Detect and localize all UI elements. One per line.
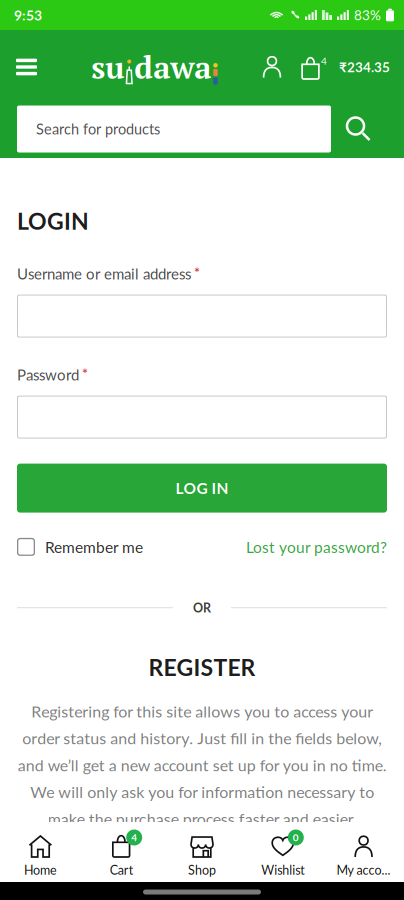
staticText: 4: [321, 55, 327, 67]
staticText: Home: [24, 862, 57, 877]
staticText: REGISTER: [148, 653, 255, 681]
button[interactable]: [17, 295, 387, 338]
staticText: su: [91, 46, 124, 88]
staticText: *: [194, 264, 200, 280]
button[interactable]: su: [91, 46, 218, 88]
staticText: Password: [17, 366, 79, 384]
button[interactable]: [331, 105, 404, 152]
button[interactable]: Shop: [162, 834, 242, 877]
button[interactable]: LOG IN: [17, 464, 387, 513]
staticText: 0: [293, 831, 299, 843]
staticText: Search for products: [36, 120, 160, 138]
button[interactable]: Home: [0, 834, 81, 877]
button[interactable]: 0: [242, 834, 323, 877]
staticText: LOGIN: [17, 207, 89, 235]
staticText: *: [82, 365, 88, 381]
staticText: 9:53: [14, 7, 42, 23]
staticText: 83%: [354, 7, 381, 23]
button[interactable]: Search for products: [17, 105, 331, 152]
staticText: ₹234.35: [339, 59, 390, 75]
staticText: Remember me: [45, 538, 143, 556]
staticText: Registering for this site allows you to …: [17, 698, 386, 832]
button[interactable]: [16, 59, 47, 75]
staticText: Wishlist: [261, 862, 304, 877]
button[interactable]: [262, 56, 301, 77]
staticText: Lost your password?: [246, 538, 387, 556]
button[interactable]: 4: [301, 55, 339, 79]
button[interactable]: [17, 396, 387, 439]
button[interactable]: Remember me: [17, 538, 143, 556]
staticText: My acco...: [337, 862, 391, 877]
staticText: 4: [131, 831, 137, 843]
button[interactable]: Lost your password?: [246, 538, 387, 556]
staticText: Cart: [110, 862, 133, 877]
staticText: Username or email address: [17, 265, 191, 283]
button[interactable]: My acco...: [323, 834, 404, 877]
button[interactable]: 4: [81, 834, 162, 877]
staticText: LOG IN: [175, 479, 228, 497]
button[interactable]: ₹234.35: [339, 59, 390, 75]
staticText: OR: [193, 600, 211, 615]
staticText: Shop: [188, 862, 216, 877]
staticText: dawa: [134, 46, 211, 88]
